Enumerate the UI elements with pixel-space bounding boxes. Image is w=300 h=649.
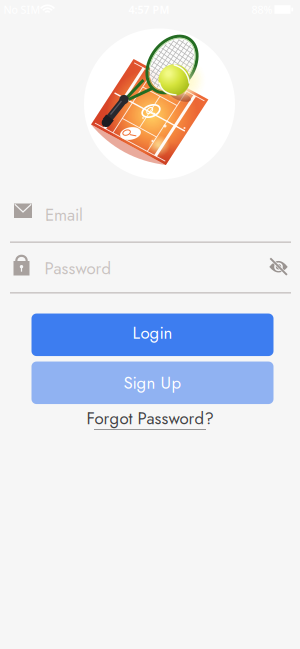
staticText: Email: [45, 203, 83, 227]
staticText: Login: [132, 321, 172, 345]
staticText: Sign Up: [123, 371, 181, 395]
staticText: Password: [44, 256, 111, 281]
staticText: Forgot Password?: [86, 406, 213, 431]
